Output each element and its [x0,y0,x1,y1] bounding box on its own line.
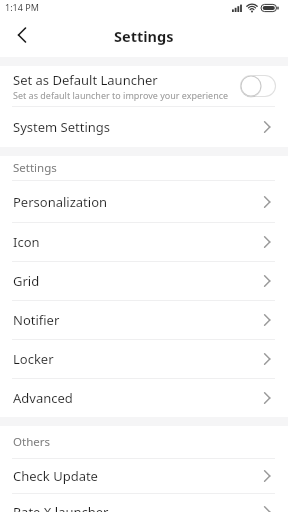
button[interactable]: Locker [0,340,288,378]
button[interactable]: System Settings [0,107,288,147]
staticText: Personalization [13,193,108,211]
button[interactable] [10,23,34,47]
button[interactable]: Check Update [0,459,288,493]
button[interactable]: Advanced [0,379,288,417]
button[interactable]: Rate X launcher [0,494,288,512]
staticText: System Settings [13,118,111,136]
staticText: Advanced [13,389,73,407]
button[interactable]: Set as Default Launcher [0,66,288,106]
button[interactable]: Personalization [0,181,288,222]
staticText: Set as default launcher to improve your … [13,89,229,101]
staticText: Locker [13,350,54,368]
staticText: 1:14 PM [5,1,39,13]
staticText: Check Update [13,467,98,485]
button[interactable]: Grid [0,262,288,300]
staticText: Set as Default Launcher [13,71,158,89]
staticText: Others [13,434,50,450]
staticText: Settings [114,26,174,46]
staticText: Icon [13,233,40,251]
button[interactable]: Notifier [0,301,288,339]
staticText: Grid [13,272,40,290]
staticText: Rate X launcher [13,503,109,512]
staticText: Settings [13,160,57,176]
staticText: Notifier [13,311,60,329]
button[interactable]: Icon [0,223,288,261]
